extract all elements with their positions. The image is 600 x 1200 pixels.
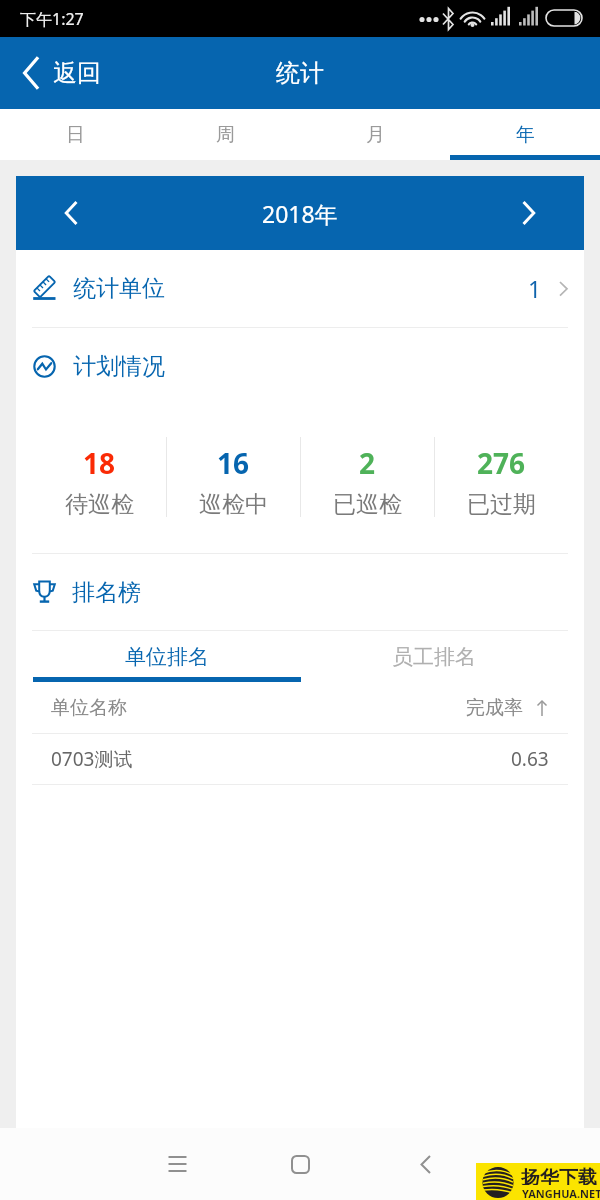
staticText: 0703测试 bbox=[51, 746, 133, 772]
button[interactable]: 16 bbox=[167, 404, 300, 553]
button[interactable]: 返回 bbox=[0, 49, 115, 97]
staticText: 0.63 bbox=[511, 746, 549, 772]
button[interactable]: 员工排名 bbox=[300, 631, 567, 682]
staticText: 2018年 bbox=[262, 198, 338, 229]
staticText: 巡检中 bbox=[199, 490, 268, 519]
staticText: 周 bbox=[216, 123, 235, 147]
button[interactable]: 周 bbox=[150, 109, 300, 160]
button[interactable]: 单位排名 bbox=[33, 631, 300, 682]
staticText: 扬华下载 bbox=[521, 1166, 597, 1185]
staticText: 已过期 bbox=[467, 490, 536, 519]
staticText: 日 bbox=[66, 123, 85, 147]
button[interactable]: 统计单位 bbox=[16, 250, 584, 327]
staticText: 1 bbox=[528, 273, 542, 304]
staticText: 月 bbox=[366, 123, 385, 147]
staticText: YANGHUA.NET bbox=[522, 1186, 600, 1200]
button[interactable]: Previous year bbox=[16, 176, 126, 250]
staticText: 统计 bbox=[276, 58, 324, 88]
button[interactable]: 日 bbox=[0, 109, 150, 160]
button[interactable]: 单位名称 bbox=[16, 682, 584, 733]
staticText: 276 bbox=[477, 444, 526, 482]
button[interactable]: 年 bbox=[450, 109, 600, 160]
staticText: 年 bbox=[516, 123, 535, 147]
button[interactable]: 276 bbox=[435, 404, 568, 553]
staticText: 2 bbox=[359, 444, 376, 482]
staticText: 待巡检 bbox=[65, 490, 134, 519]
button[interactable]: 2 bbox=[301, 404, 434, 553]
button[interactable]: 18 bbox=[32, 404, 166, 553]
staticText: 18 bbox=[83, 444, 116, 482]
staticText: 计划情况 bbox=[73, 352, 165, 381]
staticText: 16 bbox=[217, 444, 250, 482]
staticText: 返回 bbox=[53, 58, 101, 88]
staticText: 下午1:27 bbox=[20, 8, 84, 30]
staticText: 排名榜 bbox=[72, 578, 141, 607]
button[interactable]: Home bbox=[269, 1133, 331, 1195]
staticText: 完成率 bbox=[466, 696, 523, 720]
button[interactable]: Back bbox=[395, 1133, 457, 1195]
button[interactable]: Next year bbox=[474, 176, 584, 250]
staticText: 员工排名 bbox=[392, 644, 476, 670]
button[interactable]: Recent apps bbox=[146, 1133, 208, 1195]
staticText: 单位名称 bbox=[51, 696, 127, 720]
button[interactable]: 月 bbox=[300, 109, 450, 160]
staticText: 单位排名 bbox=[125, 644, 209, 670]
button[interactable]: 0703测试 bbox=[16, 734, 584, 784]
staticText: 统计单位 bbox=[73, 274, 165, 303]
staticText: 已巡检 bbox=[333, 490, 402, 519]
